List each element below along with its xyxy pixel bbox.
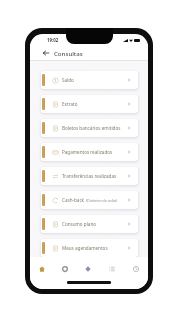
staticText: (Dinheiro de volta) [86,198,118,203]
button[interactable]: Boletos bancários emitidos [41,119,138,137]
button[interactable]: Pagamentos realizados [41,143,138,161]
staticText: Extrato [62,101,78,107]
staticText: 19:02 [47,37,59,43]
button[interactable]: Saldo [41,71,138,89]
button[interactable]: Extrato [41,95,138,113]
button[interactable]: Settings [53,258,76,280]
button[interactable]: Meus agendamentos [41,239,138,257]
staticText: Meus agendamentos [62,245,108,251]
staticText: Consultas [54,49,83,57]
staticText: Cash-back [62,197,85,203]
staticText: Saldo [62,77,74,83]
staticText: Pagamentos realizados [62,149,113,155]
button[interactable]: Help [124,258,148,280]
button[interactable]: Cash-back [41,191,138,209]
button[interactable]: List [100,258,124,280]
button[interactable]: Transferências realizadas [41,167,138,185]
button[interactable]: Consumo plano [41,215,138,233]
staticText: Consumo plano [62,221,97,227]
button[interactable]: Home [30,258,53,280]
staticText: Transferências realizadas [62,173,117,179]
staticText: Boletos bancários emitidos [62,125,121,131]
button[interactable]: Offers [76,258,100,280]
button[interactable]: Back [41,48,51,58]
